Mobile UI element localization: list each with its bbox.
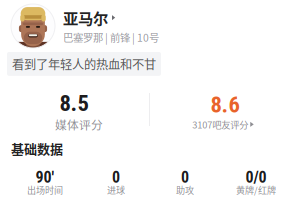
staticText: 看到了年轻人的热血和不甘 xyxy=(12,57,156,71)
button[interactable]: 8.6 xyxy=(148,94,298,130)
staticText: 媒体评分 xyxy=(55,118,103,131)
staticText: 黄牌/红牌 xyxy=(236,185,276,195)
staticText: 出场时间 xyxy=(27,185,63,195)
staticText: 巴塞罗那 | 前锋 | 10号 xyxy=(63,31,159,43)
staticText: 基础数据 xyxy=(11,141,63,156)
staticText: 进球 xyxy=(107,185,125,195)
staticText: 0 xyxy=(112,170,120,185)
staticText: 亚马尔 xyxy=(63,9,108,26)
button[interactable]: 8.5 xyxy=(4,94,154,130)
button[interactable]: 亚马尔 xyxy=(11,4,241,48)
staticText: 90' xyxy=(35,170,54,185)
staticText: 助攻 xyxy=(176,185,194,195)
staticText: 0 xyxy=(181,170,189,185)
staticText: 8.6 xyxy=(210,94,239,115)
staticText: 8.5 xyxy=(59,93,88,114)
staticText: 3107吧友评分 xyxy=(192,119,248,130)
staticText: 0/0 xyxy=(245,170,266,185)
